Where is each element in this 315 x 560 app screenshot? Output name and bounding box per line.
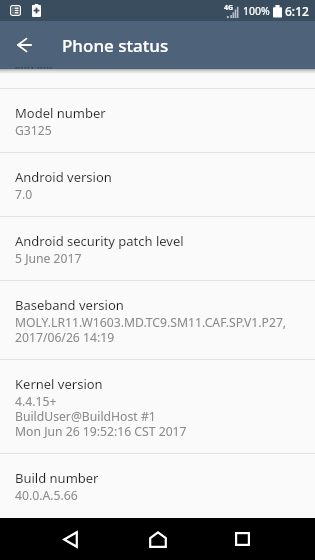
staticText: Model number	[15, 104, 106, 122]
staticText: 5 June 2017	[15, 250, 82, 267]
staticText: Kernel version	[15, 375, 103, 393]
button[interactable]: Back	[0, 21, 48, 69]
staticText: 7.0	[15, 186, 33, 203]
staticText: 40.0.A.5.66	[15, 487, 78, 504]
staticText: 4.4.15+ BuildUser@BuildHost #1 Mon Jun 2…	[15, 393, 187, 440]
staticText: 100%	[243, 4, 270, 18]
button[interactable]: Android security patch level	[0, 217, 315, 280]
staticText: Android security patch level	[15, 232, 184, 250]
staticText: 6:12	[285, 3, 309, 19]
button[interactable]: Build number	[0, 454, 315, 517]
staticText: Baseband version	[15, 296, 124, 314]
staticText: Phone status	[62, 34, 169, 57]
staticText: 4G	[224, 3, 234, 13]
button[interactable]: Android version	[0, 153, 315, 216]
staticText: G3125	[15, 122, 52, 139]
staticText: Build number	[15, 469, 99, 487]
button[interactable]: Kernel version	[0, 360, 315, 453]
button[interactable]: Baseband version	[0, 281, 315, 359]
staticText: MOLY.LR11.W1603.MD.TC9.SM11.CAF.SP.V1.P2…	[15, 314, 287, 346]
button[interactable]: Home	[134, 518, 182, 560]
button[interactable]: Back	[46, 518, 94, 560]
button[interactable]: Recent apps	[218, 518, 266, 560]
button[interactable]: Model number	[0, 89, 315, 152]
staticText: Android version	[15, 168, 112, 186]
